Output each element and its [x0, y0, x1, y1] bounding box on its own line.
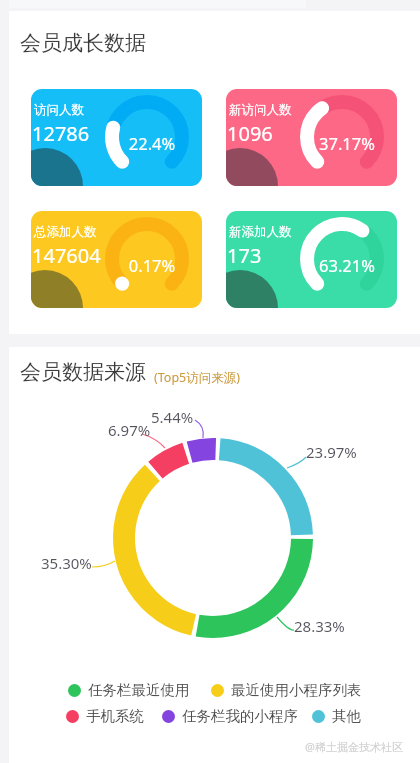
- staticText: 1096: [227, 120, 273, 147]
- button[interactable]: 任务栏我的小程序: [162, 707, 298, 725]
- staticText: 0.17%: [112, 254, 192, 276]
- staticText: 任务栏我的小程序: [182, 707, 298, 725]
- button[interactable]: 总添加人数: [31, 211, 202, 308]
- staticText: @稀土掘金技术社区: [305, 739, 403, 754]
- staticText: 5.44%: [151, 407, 194, 427]
- staticText: 手机系统: [86, 707, 144, 725]
- staticText: 新访问人数: [229, 102, 292, 118]
- button[interactable]: 最近使用小程序列表: [211, 681, 362, 699]
- staticText: 22.4%: [112, 132, 192, 154]
- staticText: 任务栏最近使用: [88, 681, 190, 699]
- staticText: 新添加人数: [229, 224, 292, 240]
- staticText: 12786: [32, 120, 90, 147]
- button[interactable]: 手机系统: [66, 707, 144, 725]
- staticText: 会员数据来源: [20, 359, 146, 385]
- staticText: 最近使用小程序列表: [231, 681, 362, 699]
- button[interactable]: 新访问人数: [226, 89, 397, 186]
- button[interactable]: 任务栏最近使用: [68, 681, 190, 699]
- staticText: 23.97%: [306, 442, 357, 462]
- staticText: 28.33%: [294, 616, 345, 636]
- button[interactable]: 访问人数: [31, 89, 202, 186]
- staticText: 访问人数: [34, 102, 84, 118]
- staticText: 其他: [332, 707, 361, 725]
- staticText: 37.17%: [307, 132, 387, 154]
- staticText: 35.30%: [41, 553, 92, 573]
- staticText: 6.97%: [108, 420, 151, 440]
- staticText: 147604: [32, 242, 101, 269]
- button[interactable]: 新添加人数: [226, 211, 397, 308]
- staticText: (Top5访问来源): [154, 369, 240, 386]
- staticText: 会员成长数据: [20, 30, 146, 56]
- staticText: 173: [227, 242, 262, 269]
- staticText: 63.21%: [307, 254, 387, 276]
- button[interactable]: 其他: [312, 707, 361, 725]
- staticText: 总添加人数: [34, 224, 97, 240]
